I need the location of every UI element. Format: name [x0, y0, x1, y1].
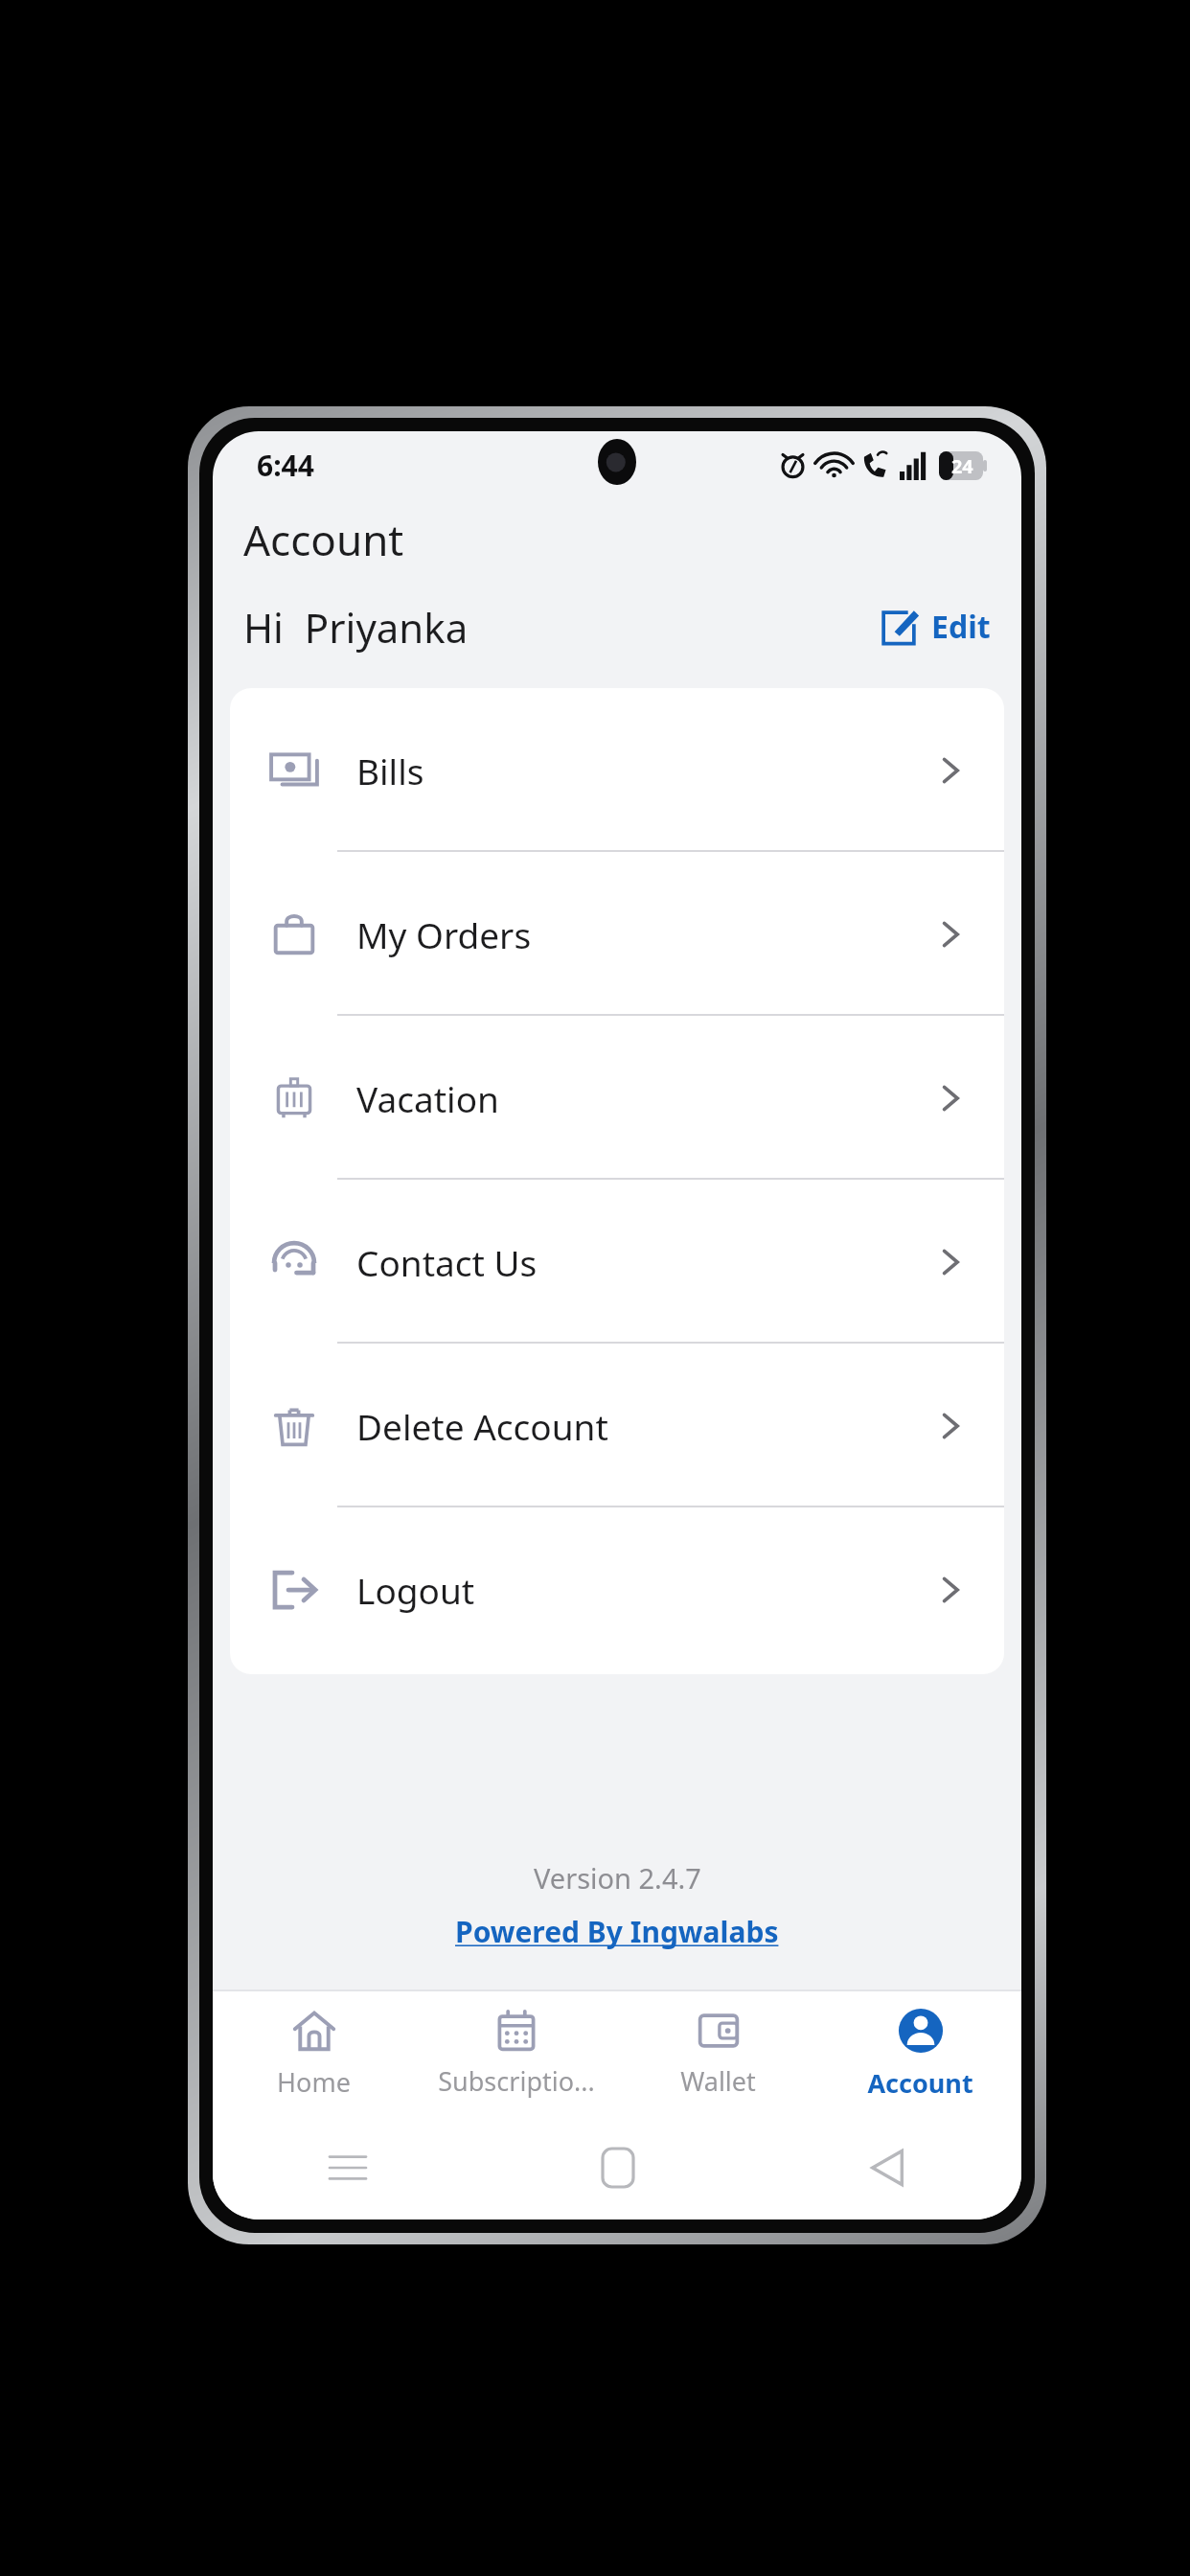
button[interactable]: Subscriptio...: [415, 1991, 617, 2116]
button[interactable]: Home: [213, 1991, 415, 2116]
button[interactable]: Bills: [230, 688, 1004, 852]
staticText: Home: [277, 2064, 351, 2100]
button[interactable]: Logout: [230, 1507, 1004, 1671]
other: Open: [933, 917, 968, 952]
other: Open: [933, 1245, 968, 1279]
staticText: Logout: [356, 1566, 475, 1614]
staticText: Bills: [356, 747, 424, 794]
other: Open: [933, 1409, 968, 1443]
other: Open: [933, 1573, 968, 1607]
staticText: Wallet: [680, 2063, 756, 2099]
other: Open: [933, 753, 968, 788]
button[interactable]: Delete Account: [230, 1344, 1004, 1507]
button[interactable]: Contact Us: [230, 1180, 1004, 1344]
button[interactable]: Home: [483, 2116, 752, 2219]
button[interactable]: My Orders: [230, 852, 1004, 1016]
staticText: Account: [867, 2065, 973, 2101]
staticText: Subscriptio...: [438, 2063, 595, 2099]
staticText: Vacation: [356, 1074, 499, 1122]
other: Open: [933, 1081, 968, 1115]
button[interactable]: Vacation: [230, 1016, 1004, 1180]
button[interactable]: Wallet: [617, 1991, 819, 2116]
button[interactable]: Edit: [872, 600, 996, 654]
staticText: Edit: [931, 606, 991, 648]
staticText: Contact Us: [356, 1238, 538, 1286]
staticText: Version 2.4.7: [534, 1859, 701, 1897]
button[interactable]: Account: [819, 1991, 1021, 2116]
staticText: Hi Priyanka: [243, 600, 469, 655]
button[interactable]: Powered By Ingwalabs: [455, 1912, 779, 1951]
button[interactable]: Recents: [213, 2116, 483, 2219]
button[interactable]: Back: [752, 2116, 1021, 2219]
staticText: Delete Account: [356, 1402, 608, 1450]
staticText: 6:44: [257, 446, 314, 485]
staticText: My Orders: [356, 910, 532, 958]
staticText: 24: [951, 453, 973, 479]
staticText: Account: [243, 511, 404, 568]
